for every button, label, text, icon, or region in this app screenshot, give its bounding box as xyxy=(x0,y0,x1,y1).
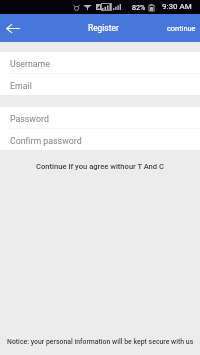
staticText: Continue If you agree withour T And C xyxy=(36,162,164,171)
staticText: 82% xyxy=(132,3,146,11)
staticText: Email xyxy=(10,81,32,91)
staticText: Confirm password xyxy=(10,136,82,146)
staticText: continue xyxy=(167,24,196,33)
staticText: Register xyxy=(88,23,119,33)
staticText: Password xyxy=(10,114,49,124)
staticText: 9:30 AM xyxy=(162,2,192,11)
button[interactable]: Password xyxy=(0,107,200,128)
button[interactable]: Email xyxy=(0,74,200,95)
button[interactable]: Continue If you agree withour T And C xyxy=(0,158,200,174)
button[interactable]: Confirm password xyxy=(0,129,200,150)
staticText: Notice: your personal information will b… xyxy=(7,338,194,346)
button[interactable]: continue xyxy=(163,18,200,39)
button[interactable]: Back xyxy=(0,15,26,41)
button[interactable]: Username xyxy=(0,52,200,73)
staticText: Username xyxy=(10,59,50,69)
